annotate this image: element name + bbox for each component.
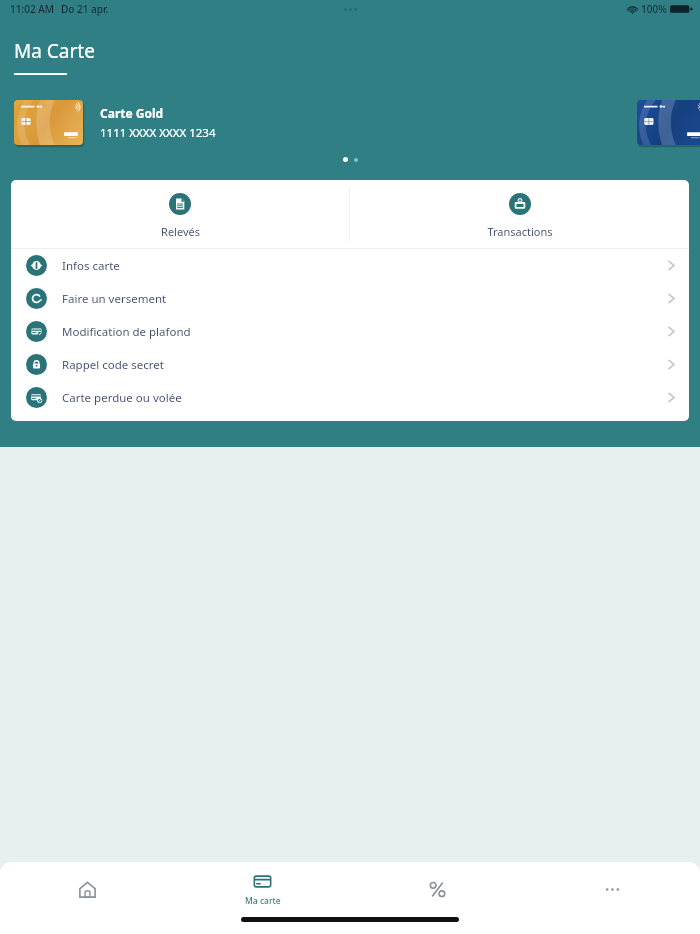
staticText: 100% [641,2,667,16]
staticText: Carte perdue ou volée [62,390,182,406]
button[interactable]: Carte perdue ou volée [11,381,689,414]
button[interactable]: Infos carte [11,249,689,282]
button[interactable]: Rappel code secret [11,348,689,381]
staticText: 1111 XXXX XXXX 1234 [100,125,216,141]
staticText: Infos carte [62,258,120,274]
staticText: Modification de plafond [62,324,191,340]
button[interactable]: Modification de plafond [11,315,689,348]
staticText: Transactions [487,224,553,239]
staticText: Ma Carte [14,38,95,64]
staticText: Do 21 apr. [61,2,109,16]
button[interactable]: Faire un versement [11,282,689,315]
button[interactable]: Carte Visa suivante [637,100,700,145]
staticText: Rappel code secret [62,357,164,373]
button[interactable]: Offres [350,880,525,899]
staticText: Relevés [161,224,200,239]
button[interactable]: Relevés [11,180,349,239]
button[interactable]: Ma carte [175,872,350,907]
button[interactable]: Carte Gold [14,100,216,145]
button[interactable]: Accueil [0,880,175,899]
staticText: Carte Gold [100,105,164,121]
staticText: 11:02 AM [10,2,54,16]
button[interactable]: Plus [525,880,700,899]
staticText: Faire un versement [62,291,167,307]
staticText: Ma carte [245,895,281,907]
button[interactable]: Transactions [350,180,689,239]
